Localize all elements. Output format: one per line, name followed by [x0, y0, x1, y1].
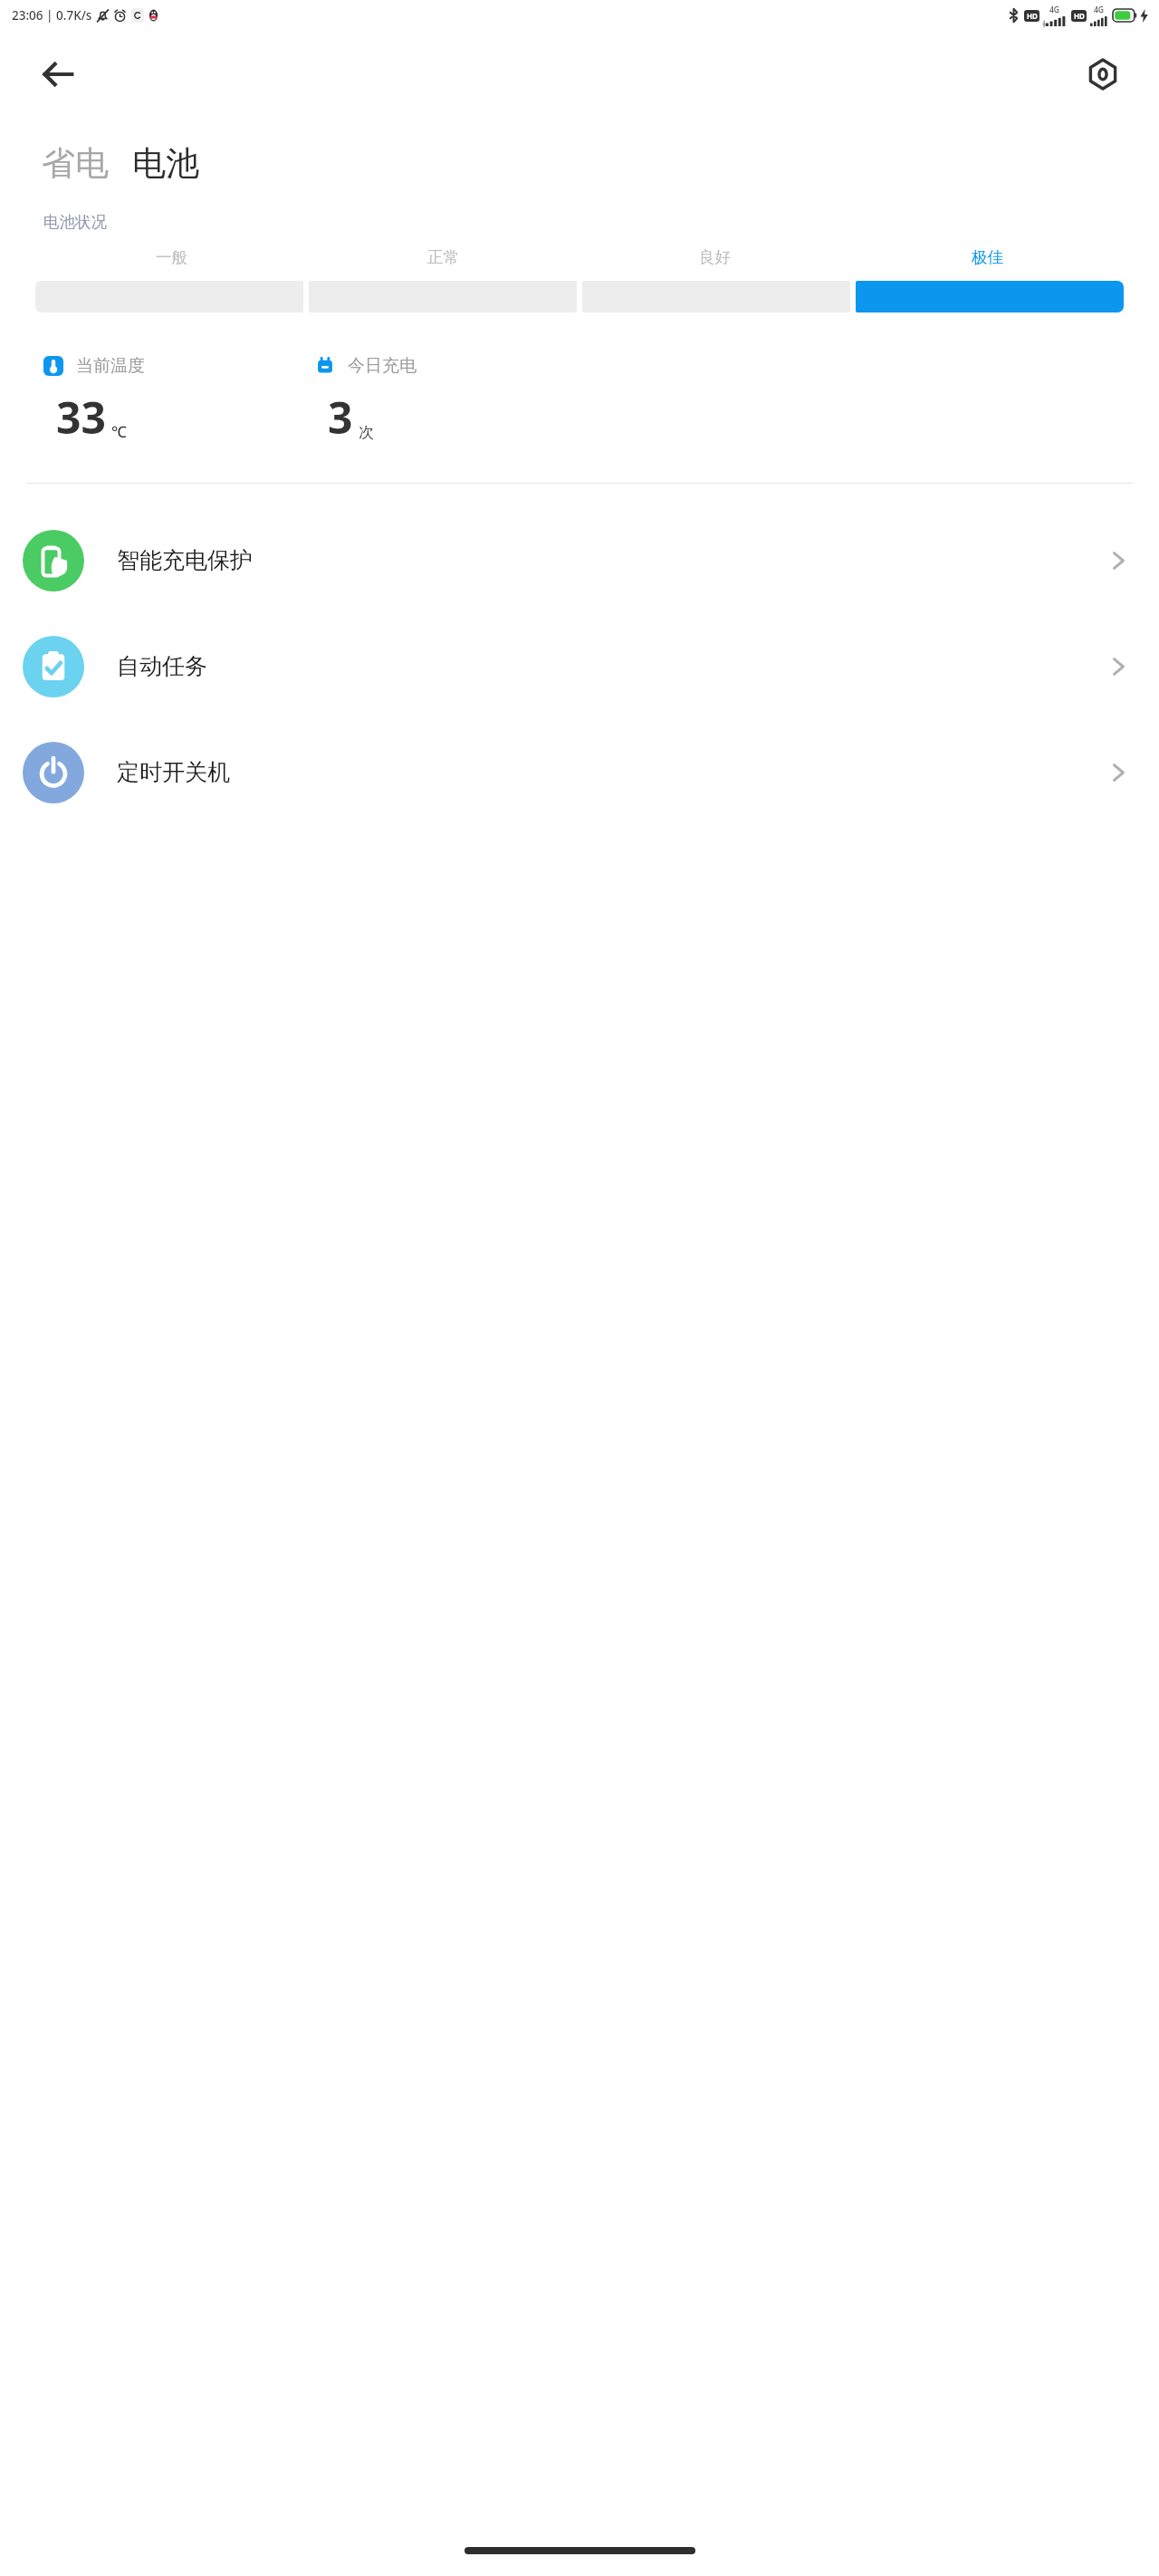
staticText: 定时开关机	[117, 758, 230, 786]
button[interactable]: 智能充电保护	[0, 507, 1159, 613]
staticText: HD	[1074, 11, 1085, 21]
staticText: 23:06 | 0.7K/s	[12, 7, 92, 24]
staticText: 次	[359, 423, 374, 442]
button[interactable]: 自动任务	[0, 613, 1159, 719]
staticText: 3	[328, 388, 353, 447]
staticText: 4G	[1049, 5, 1060, 15]
staticText: ℃	[111, 421, 127, 442]
staticText: 今日充电	[348, 355, 417, 377]
button[interactable]: 省电	[42, 142, 109, 185]
staticText: 智能充电保护	[117, 546, 253, 574]
button[interactable]: 定时开关机	[0, 719, 1159, 825]
staticText: 极佳	[972, 247, 1003, 267]
staticText: 电池	[132, 142, 199, 185]
button[interactable]: Settings	[1076, 47, 1130, 101]
staticText: 正常	[427, 247, 459, 267]
staticText: HD	[1027, 11, 1038, 21]
button[interactable]: 电池	[132, 142, 199, 185]
button[interactable]	[856, 281, 1124, 312]
button[interactable]: Back	[31, 47, 85, 101]
staticText: 自动任务	[117, 652, 207, 680]
staticText: 良好	[699, 247, 731, 267]
staticText: 电池状况	[43, 212, 107, 232]
staticText: 4G	[1094, 5, 1105, 15]
staticText: 省电	[42, 142, 109, 185]
staticText: 一般	[156, 247, 187, 267]
staticText: 33	[56, 388, 106, 447]
staticText: 当前温度	[76, 355, 145, 377]
